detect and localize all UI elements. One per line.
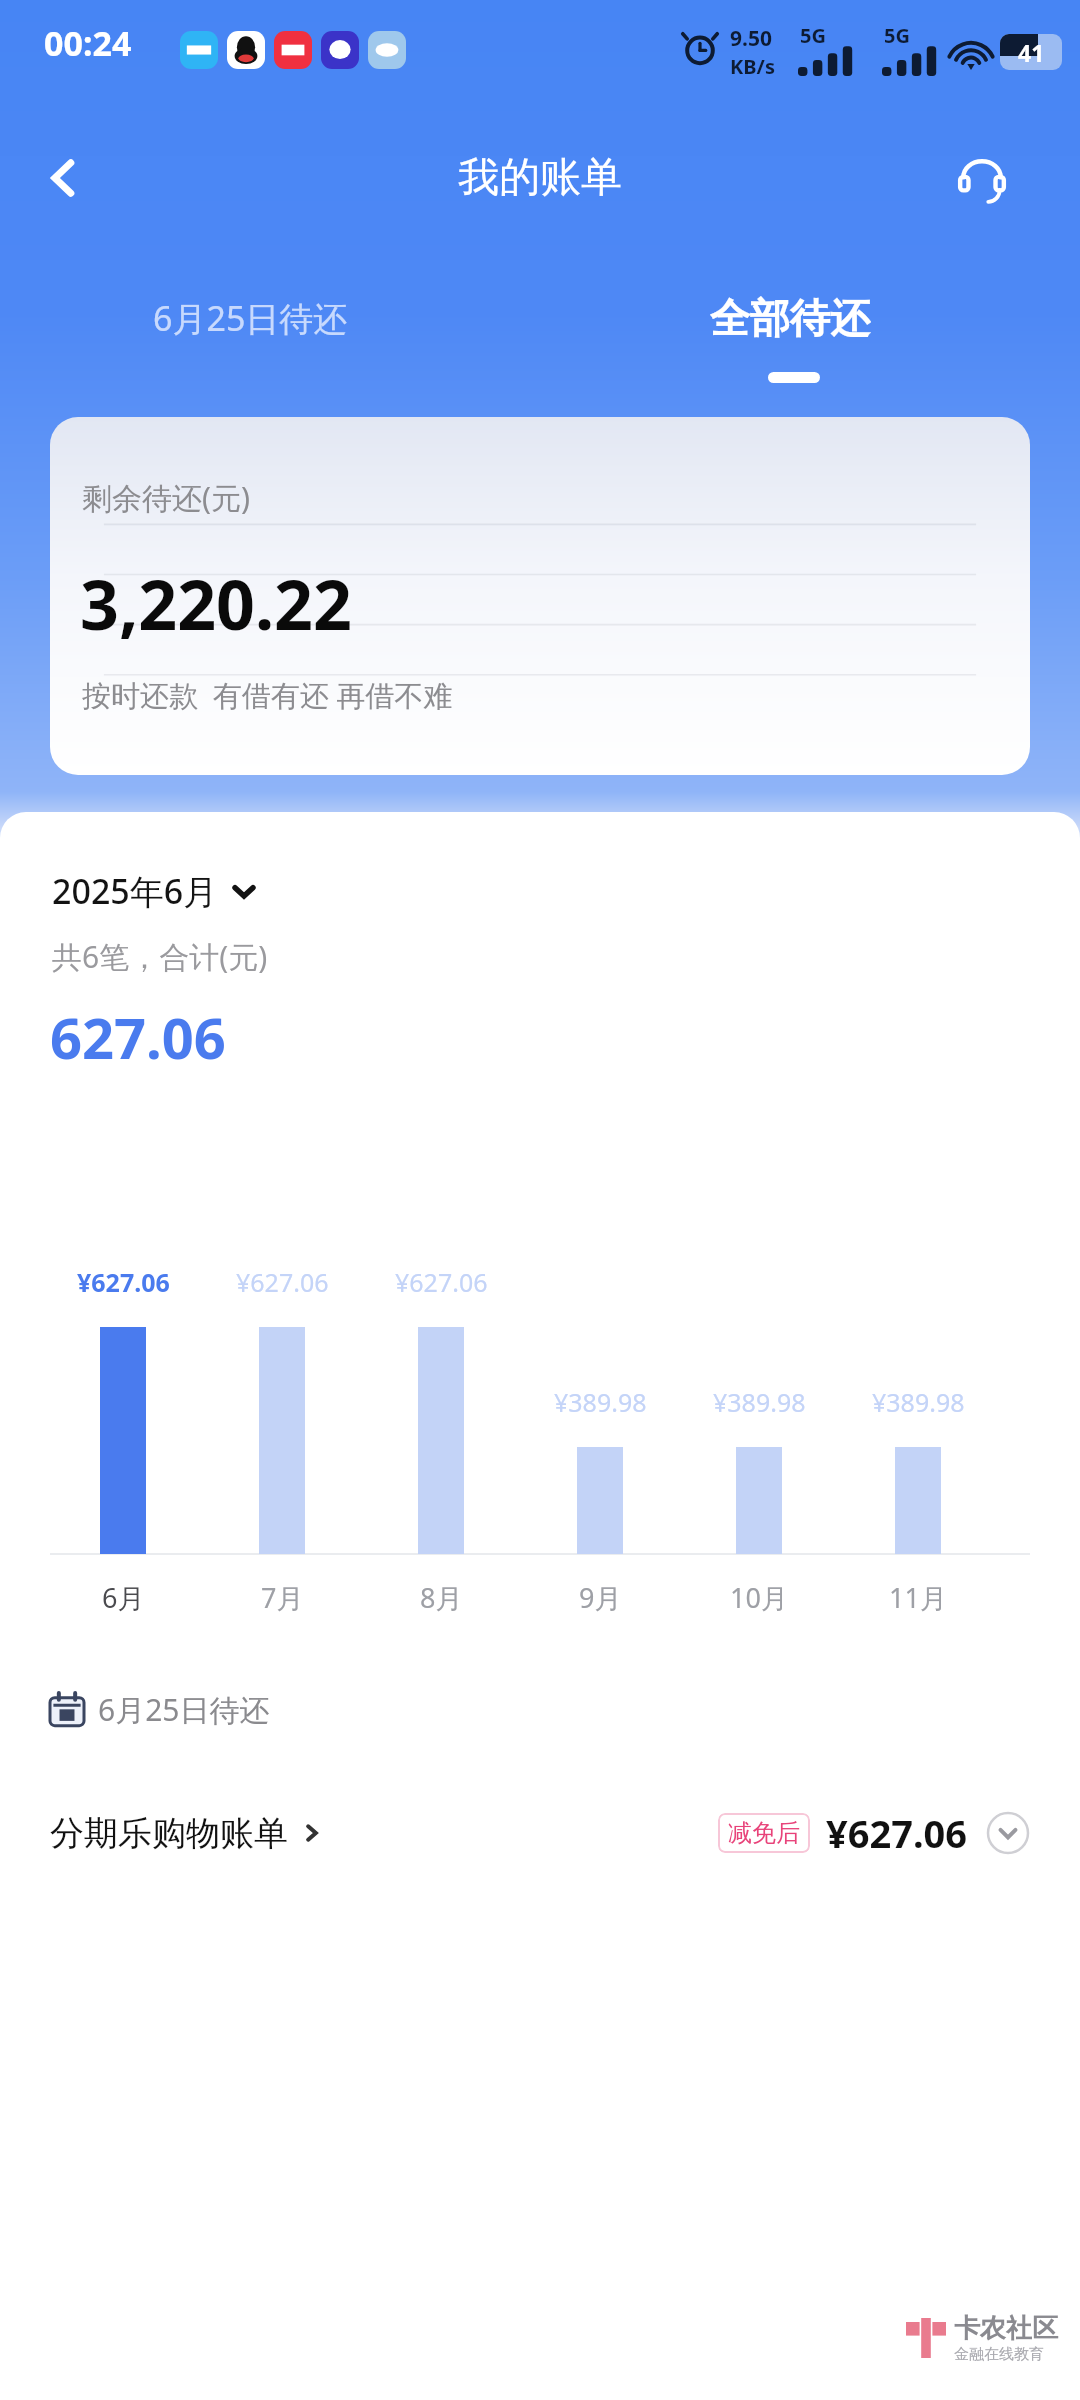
staticText: 7月 [261,1579,304,1616]
staticText: 分期乐购物账单 [50,1812,288,1855]
staticText: KB/s [730,53,775,80]
staticText: ¥627.06 [236,1265,329,1299]
staticText: 41 [1018,37,1045,68]
staticText: 9月 [579,1579,622,1616]
button[interactable]: 分期乐购物账单 [0,1778,1080,1888]
staticText: 卡农社区 [954,2312,1058,2345]
staticText: 5G [800,22,826,49]
staticText: 5G [884,22,910,49]
button[interactable]: Back [26,140,102,216]
staticText: 3,220.22 [80,557,352,650]
staticText: 减免后 [728,1818,800,1848]
staticText: 金融在线教育 [954,2345,1044,2364]
staticText: 627.06 [50,999,226,1075]
staticText: 9.50 [730,24,772,53]
staticText: ¥389.98 [872,1385,965,1419]
staticText: ¥627.06 [826,1807,968,1859]
button[interactable]: 全部待还 [650,276,930,360]
button[interactable]: 6月25日待还 [110,282,390,354]
button[interactable]: 剩余待还(元) [50,417,1030,775]
staticText: ¥627.06 [77,1265,170,1299]
button[interactable]: Customer service [944,142,1020,218]
staticText: 11月 [889,1579,947,1616]
staticText: ¥389.98 [554,1385,647,1419]
staticText: 6月 [102,1579,145,1616]
staticText: ¥627.06 [395,1265,488,1299]
staticText: 10月 [730,1579,788,1616]
staticText: 全部待还 [710,293,870,343]
staticText: 按时还款 有借有还 再借不难 [82,675,453,715]
staticText: 8月 [420,1579,463,1616]
button[interactable]: 2025年6月 [52,868,258,914]
staticText: 我的账单 [0,152,1080,204]
staticText: 6月25日待还 [98,1689,270,1730]
staticText: 2025年6月 [52,868,218,914]
staticText: 共6笔，合计(元) [52,936,268,977]
staticText: 剩余待还(元) [82,477,250,518]
staticText: 00:24 [44,20,132,66]
button[interactable]: Expand [986,1811,1030,1855]
staticText: ¥389.98 [713,1385,806,1419]
staticText: 6月25日待还 [153,295,348,341]
